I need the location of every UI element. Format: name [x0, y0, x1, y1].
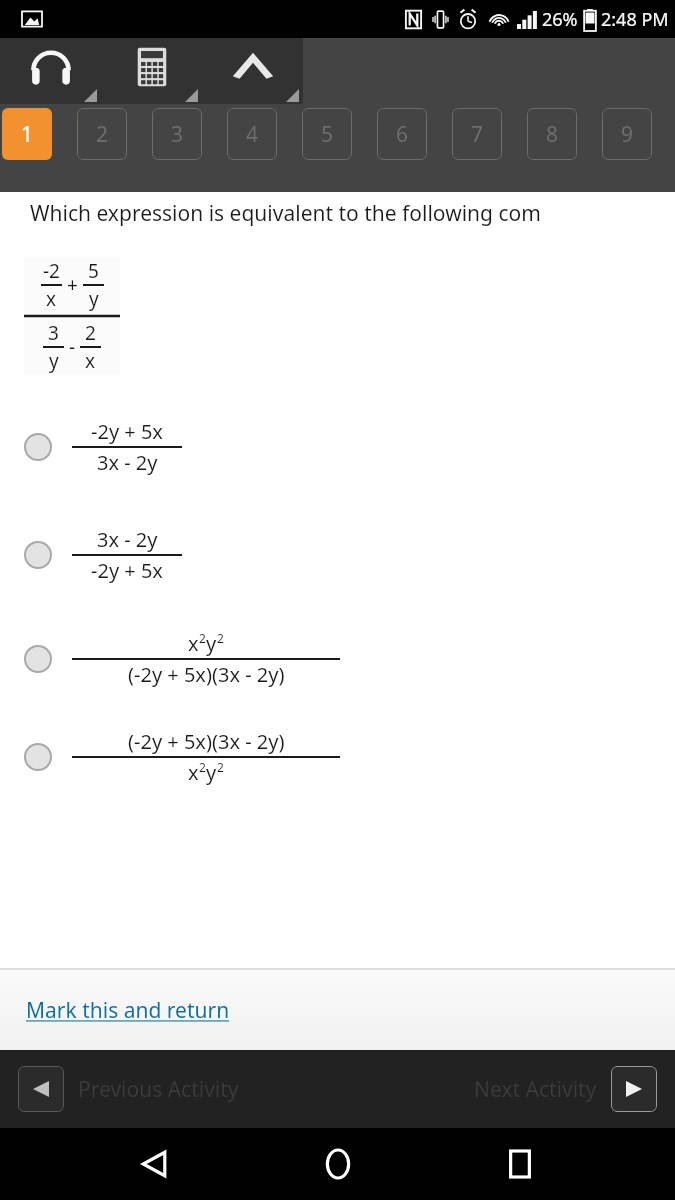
staticText: 3x - 2y	[97, 526, 158, 553]
staticText: -2y + 5x	[91, 557, 163, 584]
staticText: 26%	[542, 7, 578, 32]
staticText: y	[49, 348, 59, 374]
staticText: 3	[171, 120, 184, 149]
button[interactable]: 6	[377, 108, 427, 160]
button[interactable]: 1	[2, 108, 52, 160]
staticText: x	[188, 759, 199, 786]
button[interactable]: Previous Activity	[18, 1066, 64, 1112]
button[interactable]: 7	[452, 108, 502, 160]
button[interactable]: 8	[527, 108, 577, 160]
button[interactable]: Next Activity	[611, 1066, 657, 1112]
button[interactable]: Audio	[0, 38, 101, 104]
staticText: 2	[85, 320, 96, 346]
button[interactable]: 3x - 2y	[24, 526, 675, 584]
button[interactable]: 5	[302, 108, 352, 160]
staticText: -	[64, 334, 80, 360]
button[interactable]: 9	[602, 108, 652, 160]
staticText: 9	[621, 120, 634, 149]
button[interactable]: x	[24, 630, 675, 688]
button[interactable]: Mark this and return	[26, 996, 230, 1025]
staticText: 2	[217, 759, 224, 775]
button[interactable]: Back	[127, 1136, 183, 1192]
staticText: x	[188, 630, 199, 657]
staticText: x	[46, 286, 57, 312]
staticText: 5	[321, 120, 334, 149]
staticText: (-2y + 5x)(3x - 2y)	[128, 728, 285, 755]
staticText: +	[62, 272, 83, 298]
button[interactable]: Home	[310, 1136, 366, 1192]
staticText: 3x - 2y	[97, 449, 158, 476]
button[interactable]: Expand	[202, 38, 303, 104]
staticText: 3	[48, 320, 59, 346]
staticText: 4	[246, 120, 259, 149]
staticText: 8	[546, 120, 559, 149]
staticText: (-2y + 5x)(3x - 2y)	[128, 661, 285, 688]
button[interactable]: Previous Activity	[78, 1075, 239, 1104]
staticText: Which expression is equivalent to the fo…	[30, 199, 541, 228]
staticText: 2	[96, 120, 109, 149]
staticText: -2	[43, 258, 60, 284]
staticText: 7	[471, 120, 484, 149]
staticText: 1	[21, 120, 34, 149]
staticText: y	[206, 759, 217, 786]
staticText: y	[89, 286, 99, 312]
button[interactable]: (-2y + 5x)(3x - 2y)	[24, 728, 675, 786]
staticText: x	[85, 348, 96, 374]
button[interactable]: 2	[77, 108, 127, 160]
staticText: 5	[88, 258, 99, 284]
button[interactable]: 4	[227, 108, 277, 160]
button[interactable]: 3	[152, 108, 202, 160]
staticText: Mark this and return	[26, 996, 230, 1025]
staticText: 2:48 PM	[601, 7, 669, 32]
button[interactable]: Calculator	[101, 38, 202, 104]
staticText: -2y + 5x	[91, 418, 163, 445]
staticText: y	[206, 630, 217, 657]
staticText: 2	[199, 630, 206, 646]
button[interactable]: -2y + 5x	[24, 418, 675, 476]
staticText: 2	[217, 630, 224, 646]
button[interactable]: Recent apps	[492, 1136, 548, 1192]
button[interactable]: Next Activity	[474, 1075, 597, 1104]
staticText: 2	[199, 759, 206, 775]
staticText: 6	[396, 120, 409, 149]
